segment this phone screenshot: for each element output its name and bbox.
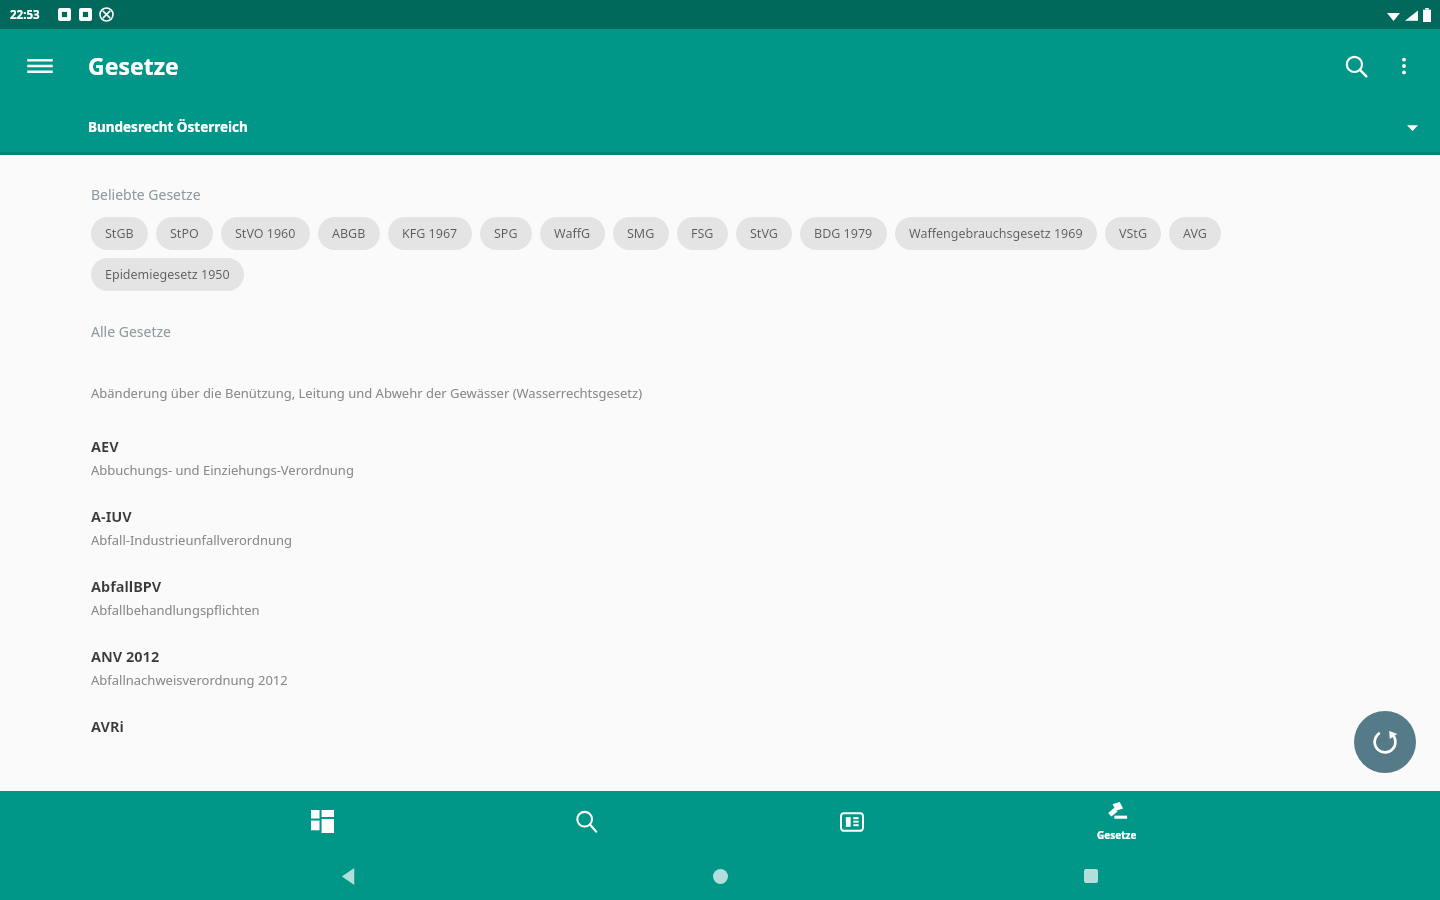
staticText: Alle Gesetze [91,322,171,341]
button[interactable]: Back [327,854,371,898]
staticText: AbfallBPV [91,576,162,596]
button[interactable]: Navigation item [454,791,719,852]
staticText: StVO 1960 [235,225,296,242]
button[interactable]: BDG 1979 [800,217,887,250]
button[interactable]: Bundesrecht Österreich [0,102,1440,152]
staticText: Abbuchungs- und Einziehungs-Verordnung [91,461,354,479]
button[interactable]: SPG [480,217,532,250]
staticText: 22:53 [10,7,40,23]
staticText: Abfallnachweisverordnung 2012 [91,671,288,689]
button[interactable]: Abänderung über die Benützung, Leitung u… [0,378,1440,408]
button[interactable]: StGB [91,217,148,250]
staticText: Abfall-Industrieunfallverordnung [91,531,293,549]
staticText: A-IUV [91,506,132,526]
button[interactable]: StVO 1960 [221,217,310,250]
staticText: Gesetze [88,50,179,81]
button[interactable]: Home [698,854,742,898]
staticText: Gesetze [1097,828,1137,842]
staticText: WaffG [554,225,591,242]
staticText: FSG [691,225,714,242]
staticText: VStG [1119,225,1147,242]
staticText: SMG [627,225,655,242]
button[interactable]: Waffengebrauchsgesetz 1969 [895,217,1097,250]
staticText: Beliebte Gesetze [91,185,201,204]
button[interactable]: Gesetze [984,791,1249,852]
staticText: Epidemiegesetz 1950 [105,266,230,283]
staticText: Abänderung über die Benützung, Leitung u… [91,384,643,402]
button[interactable]: A-IUV [0,506,1440,549]
staticText: SPG [494,225,518,242]
button[interactable]: ABGB [318,217,380,250]
button[interactable]: AVG [1169,217,1221,250]
staticText: Bundesrecht Österreich [88,118,248,136]
button[interactable]: More options [1380,42,1428,90]
staticText: StVG [750,225,778,242]
button[interactable]: SMG [613,217,669,250]
button[interactable]: AEV [0,436,1440,479]
button[interactable]: AVRi [0,716,1440,736]
staticText: Abfallbehandlungspflichten [91,601,260,619]
staticText: StGB [105,225,134,242]
staticText: AVG [1183,225,1207,242]
button[interactable]: VStG [1105,217,1161,250]
button[interactable]: Navigation item [190,791,454,852]
button[interactable]: AbfallBPV [0,576,1440,619]
staticText: ABGB [332,225,366,242]
staticText: AEV [91,436,119,456]
button[interactable]: StPO [156,217,213,250]
button[interactable]: Open navigation drawer [16,42,64,90]
button[interactable]: FSG [677,217,728,250]
staticText: Waffengebrauchsgesetz 1969 [909,225,1083,242]
button[interactable]: Navigation item [719,791,984,852]
button[interactable]: StVG [736,217,792,250]
staticText: AVRi [91,716,124,736]
button[interactable]: WaffG [540,217,605,250]
staticText: KFG 1967 [402,225,458,242]
button[interactable]: Recent apps [1069,854,1113,898]
staticText: BDG 1979 [814,225,873,242]
button[interactable]: Search [1332,42,1380,90]
button[interactable]: Epidemiegesetz 1950 [91,258,244,291]
button[interactable]: ANV 2012 [0,646,1440,689]
staticText: ANV 2012 [91,646,160,666]
button[interactable]: Refresh [1354,711,1416,773]
staticText: StPO [170,225,199,242]
button[interactable]: KFG 1967 [388,217,472,250]
